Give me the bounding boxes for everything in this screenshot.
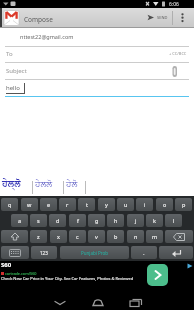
button[interactable]: g [88,214,105,227]
staticText: f [77,217,79,224]
staticText: z [37,233,40,240]
staticText: Subject [6,67,27,75]
button[interactable] [147,264,168,286]
staticText: q [8,201,12,208]
staticText: c [76,233,79,240]
button[interactable]: h [107,214,124,227]
staticText: e [47,201,51,208]
staticText: 6:06 [169,1,179,8]
staticText: m [152,233,158,240]
button[interactable]: s [30,214,47,227]
staticText: r [66,201,69,208]
staticText: t [86,201,88,208]
button[interactable]: Punjabi Prob [60,246,129,259]
button[interactable]: k [146,214,163,227]
button[interactable]: n [127,230,144,243]
button[interactable]: hello [0,80,194,98]
button[interactable]: u [117,198,134,211]
button[interactable]: o [156,198,173,211]
button[interactable] [165,230,193,243]
button[interactable]: ਹੇਲ੍ਲੋ [2,180,21,189]
button[interactable]: nttest22@gmail.com [0,28,194,47]
button[interactable] [2,9,22,27]
button[interactable] [176,8,190,27]
staticText: x [57,233,60,240]
staticText: k [153,217,156,224]
button[interactable]: t [78,198,95,211]
staticText: b [114,233,118,240]
button[interactable] [159,246,193,259]
button[interactable]: i [136,198,153,211]
staticText: a [18,217,22,224]
button[interactable]: w [21,198,38,211]
button[interactable]: S60 [0,261,194,296]
staticText: y [105,201,108,208]
button[interactable]: d [49,214,66,227]
button[interactable]: l [165,214,182,227]
button[interactable]: c [69,230,86,243]
staticText: S60 [1,261,12,269]
button[interactable]: a [11,214,28,227]
button[interactable]: Subject [0,63,194,80]
staticText: d [56,217,60,224]
button[interactable]: x [50,230,67,243]
button[interactable]: SEND [146,8,171,27]
button[interactable]: To [0,47,194,63]
staticText: SEND [157,15,168,20]
staticText: n [134,233,138,240]
staticText: Punjabi Prob [81,250,109,256]
button[interactable]: m [146,230,163,243]
button[interactable] [48,296,72,310]
button[interactable]: ਹੇਲਲੋ [35,180,53,189]
staticText: v [95,233,98,240]
staticText: j [135,217,137,224]
staticText: h [114,217,118,224]
button[interactable] [124,296,148,310]
button[interactable]: y [98,198,115,211]
staticText: s [37,217,40,224]
staticText: Check New Car Price in Your City. See Ca… [1,276,134,281]
staticText: Compose [24,15,53,24]
button[interactable] [1,230,28,243]
button[interactable]: ਹੇਲੋ [66,180,78,189]
staticText: cartrade.com/S60 [5,271,37,276]
button[interactable] [1,246,29,259]
button[interactable]: f [69,214,86,227]
button[interactable]: b [107,230,124,243]
staticText: hello [6,84,20,92]
button[interactable]: . [131,246,157,259]
staticText: g [95,217,99,224]
button[interactable]: r [59,198,76,211]
staticText: p [182,201,186,208]
staticText: i [144,201,146,208]
staticText: nttest22@gmail.com [20,33,74,40]
button[interactable]: z [30,230,47,243]
button[interactable]: v [88,230,105,243]
staticText: w [27,201,32,208]
button[interactable]: 123 [31,246,57,259]
button[interactable]: p [175,198,192,211]
staticText: o [163,201,167,208]
button[interactable]: q [1,198,18,211]
staticText: u [124,201,128,208]
staticText: To [6,50,13,58]
staticText: + CC/BCC [169,51,187,56]
button[interactable]: e [40,198,57,211]
staticText: l [173,217,175,224]
button[interactable]: j [127,214,144,227]
button[interactable] [86,296,110,310]
staticText: 123 [40,250,48,256]
staticText: . [143,249,145,257]
